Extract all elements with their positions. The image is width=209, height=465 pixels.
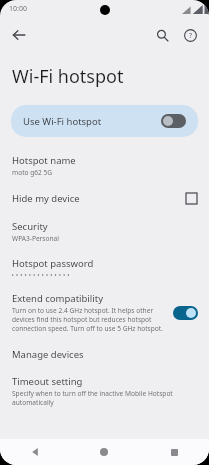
- staticText: Hide my device: [12, 192, 186, 205]
- staticText: ?: [189, 31, 193, 41]
- staticText: Use Wi-Fi hotspot: [23, 115, 161, 128]
- staticText: Wi-Fi hotspot: [12, 64, 124, 89]
- button[interactable]: Timeout setting: [0, 368, 209, 414]
- button[interactable]: Help: [176, 21, 204, 49]
- button[interactable]: Search: [148, 21, 176, 49]
- staticText: Security: [12, 220, 48, 233]
- staticText: moto g62 5G: [12, 168, 53, 177]
- staticText: Extend compatibility: [12, 292, 103, 305]
- staticText: Hotspot name: [12, 154, 76, 167]
- button[interactable]: Back: [4, 20, 34, 50]
- staticText: Manage devices: [12, 348, 84, 361]
- button[interactable]: Home: [69, 439, 139, 465]
- button[interactable]: Recents: [139, 439, 209, 465]
- button[interactable]: Extend compatibility: [0, 284, 209, 341]
- button[interactable]: Security: [0, 213, 209, 250]
- button[interactable]: Hotspot password: [0, 250, 209, 284]
- staticText: Specify when to turn off the inactive Mo…: [12, 389, 197, 407]
- staticText: Turn on to use 2.4 GHz hotspot. It helps…: [12, 306, 165, 333]
- button[interactable]: Use Wi-Fi hotspot: [11, 105, 198, 137]
- staticText: Hotspot password: [12, 257, 94, 270]
- button[interactable]: Manage devices: [0, 341, 209, 368]
- staticText: WPA3-Personal: [12, 234, 59, 243]
- button[interactable]: Back: [0, 439, 69, 465]
- staticText: 10:00: [9, 4, 27, 14]
- button[interactable]: Hotspot name: [0, 147, 209, 184]
- staticText: Timeout setting: [12, 375, 83, 388]
- button[interactable]: Hide my device: [0, 184, 209, 213]
